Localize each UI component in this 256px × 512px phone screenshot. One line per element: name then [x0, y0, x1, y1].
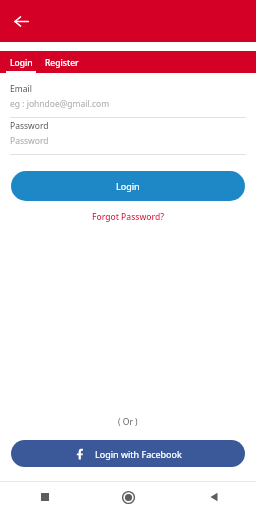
button[interactable]: Password	[0, 118, 256, 155]
button[interactable]: Login	[11, 171, 245, 201]
button[interactable]: Email	[0, 81, 256, 118]
button[interactable]: Login with Facebook	[11, 440, 245, 467]
button[interactable]: Home	[86, 482, 171, 512]
staticText: Email	[10, 83, 32, 95]
button[interactable]: Forgot Password?	[86, 209, 170, 225]
staticText: eg : johndoe@gmail.com	[10, 98, 110, 110]
staticText: ( Or )	[118, 416, 138, 428]
staticText: Forgot Password?	[92, 211, 164, 223]
staticText: Register	[45, 57, 79, 69]
staticText: Login	[116, 180, 140, 192]
button[interactable]: Register	[45, 51, 79, 73]
staticText: Password	[10, 135, 49, 147]
button[interactable]: Back	[8, 8, 34, 34]
button[interactable]: Back	[171, 482, 256, 512]
staticText: Login	[10, 57, 33, 69]
button[interactable]: Recents	[0, 482, 86, 512]
staticText: Login with Facebook	[95, 448, 182, 460]
button[interactable]: Login	[6, 51, 36, 73]
staticText: Password	[10, 120, 49, 132]
